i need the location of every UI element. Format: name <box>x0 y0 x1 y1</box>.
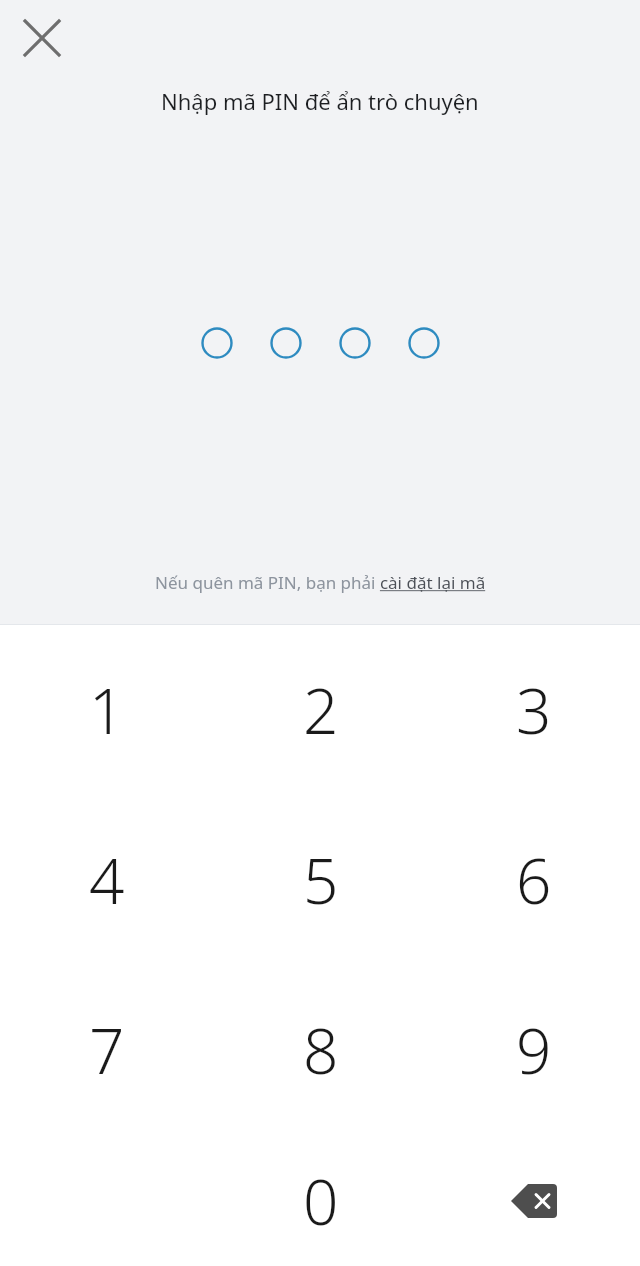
button[interactable]: Close <box>8 4 76 72</box>
staticText: 2 <box>303 668 339 752</box>
button[interactable]: 2 <box>214 625 427 795</box>
staticText: 7 <box>89 1008 125 1092</box>
staticText: 3 <box>516 668 552 752</box>
staticText: Nếu quên mã PIN, bạn phải cài đặt lại mã <box>155 571 486 594</box>
staticText: 9 <box>516 1008 552 1092</box>
staticText: 8 <box>303 1008 339 1092</box>
button[interactable]: 1 <box>0 625 214 795</box>
staticText: 6 <box>516 838 552 922</box>
button[interactable]: 6 <box>427 795 640 965</box>
staticText: 5 <box>303 838 339 922</box>
button[interactable]: 8 <box>214 965 427 1135</box>
staticText: Nhập mã PIN để ẩn trò chuyện <box>161 86 479 116</box>
button[interactable]: 7 <box>0 965 214 1135</box>
button[interactable]: 4 <box>0 795 214 965</box>
button[interactable]: 3 <box>427 625 640 795</box>
staticText: 0 <box>303 1159 339 1243</box>
staticText: 1 <box>89 668 125 752</box>
button[interactable]: 9 <box>427 965 640 1135</box>
button[interactable]: Backspace <box>427 1135 640 1266</box>
staticText: 4 <box>89 838 125 922</box>
button[interactable]: 0 <box>214 1135 427 1266</box>
button[interactable]: 5 <box>214 795 427 965</box>
button[interactable]: Nếu quên mã PIN, bạn phải cài đặt lại mã <box>155 571 486 594</box>
